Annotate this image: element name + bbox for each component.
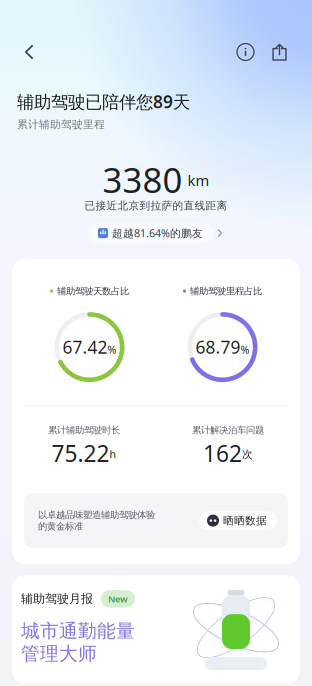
staticText: New bbox=[108, 593, 128, 605]
button[interactable]: 辅助驾驶月报 bbox=[0, 564, 312, 684]
staticText: 累计辅助驾驶里程 bbox=[17, 118, 105, 131]
button[interactable]: Information bbox=[237, 43, 254, 60]
button[interactable]: 超越81.64%的鹏友 bbox=[88, 223, 224, 243]
staticText: 辅助驾驶月报 bbox=[21, 591, 93, 606]
staticText: 已接近北京到拉萨的直线距离 bbox=[84, 199, 227, 212]
staticText: 累计辅助驾驶时长 bbox=[48, 424, 120, 436]
button[interactable]: 晒晒数据 bbox=[199, 511, 277, 530]
staticText: 162 bbox=[203, 438, 242, 468]
staticText: 75.22 bbox=[51, 438, 109, 468]
button[interactable]: Back bbox=[16, 39, 42, 65]
staticText: % bbox=[240, 343, 249, 357]
staticText: 晒晒数据 bbox=[223, 514, 267, 527]
staticText: 辅助驾驶天数占比 bbox=[57, 285, 129, 297]
staticText: h bbox=[109, 447, 116, 461]
staticText: 3380 bbox=[102, 157, 182, 203]
staticText: km bbox=[187, 171, 209, 190]
staticText: 辅助驾驶已陪伴您89天 bbox=[17, 90, 190, 113]
staticText: 超越81.64%的鹏友 bbox=[112, 226, 203, 240]
staticText: 68.79 bbox=[195, 336, 240, 359]
staticText: 次 bbox=[242, 448, 253, 461]
staticText: 累计解决泊车问题 bbox=[192, 424, 264, 436]
staticText: 67.42 bbox=[62, 336, 107, 359]
staticText: 辅助驾驶里程占比 bbox=[190, 285, 262, 297]
button[interactable]: Share bbox=[271, 43, 288, 60]
staticText: 城市通勤能量 管理大师 bbox=[21, 619, 135, 665]
staticText: % bbox=[107, 343, 116, 357]
staticText: 以卓越品味塑造辅助驾驶体验 的黄金标准 bbox=[38, 509, 155, 532]
